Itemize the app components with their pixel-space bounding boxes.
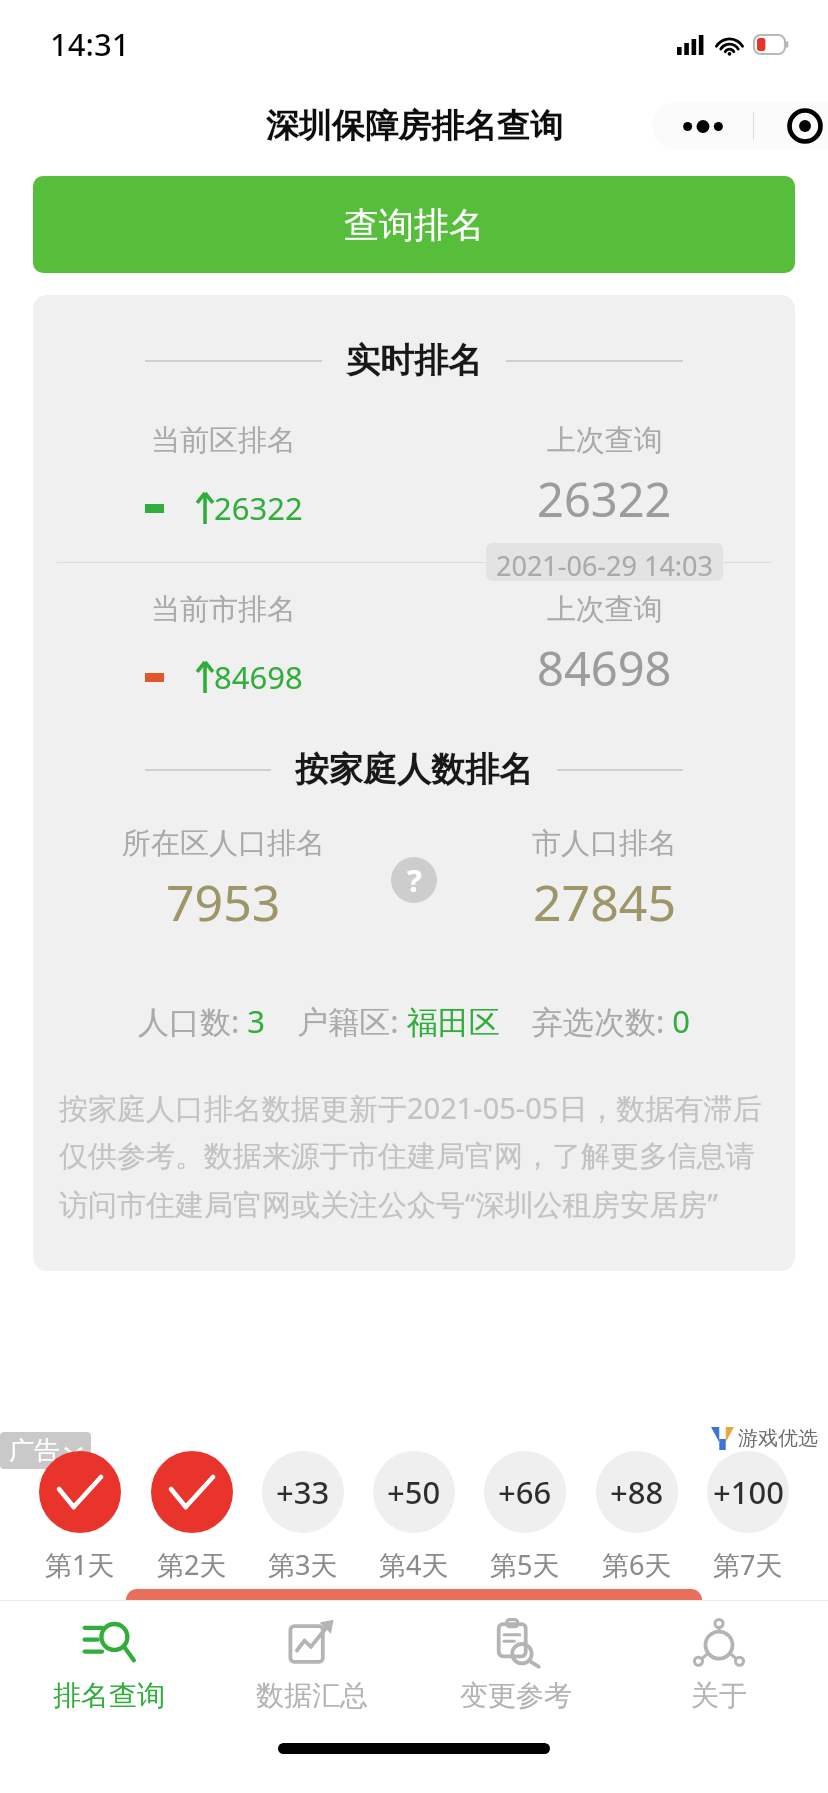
- staticText: 第4天: [379, 1546, 449, 1583]
- button[interactable]: More options: [652, 102, 828, 150]
- staticText: 7953: [166, 868, 281, 936]
- staticText: 上次查询: [547, 422, 663, 459]
- staticText: 27845: [533, 868, 676, 936]
- staticText: 14:31: [50, 23, 130, 65]
- staticText: 实时排名: [346, 339, 482, 382]
- staticText: 第1天: [45, 1546, 115, 1583]
- staticText: 游戏优选: [738, 1426, 818, 1451]
- button[interactable]: +66: [484, 1451, 566, 1583]
- button[interactable]: 第1天: [39, 1451, 121, 1583]
- button[interactable]: 排名查询: [14, 1617, 204, 1713]
- button[interactable]: 数据汇总: [217, 1617, 407, 1713]
- staticText: +100: [713, 1471, 784, 1513]
- button[interactable]: 变更参考: [421, 1617, 611, 1713]
- staticText: 当前市排名: [151, 591, 296, 628]
- staticText: 第6天: [602, 1546, 672, 1583]
- staticText: 市人口排名: [532, 825, 677, 862]
- staticText: 2021-06-29 14:03: [496, 547, 713, 577]
- staticText: 广告: [9, 1435, 59, 1466]
- staticText: +50: [387, 1471, 441, 1513]
- staticText: 84698: [214, 656, 303, 698]
- staticText: 第2天: [157, 1546, 227, 1583]
- button[interactable]: +88: [596, 1451, 678, 1583]
- button[interactable]: +33: [262, 1451, 344, 1583]
- button[interactable]: 查询排名: [33, 176, 795, 273]
- button[interactable]: 广告: [0, 1432, 91, 1469]
- staticText: 排名查询: [53, 1678, 165, 1713]
- staticText: 第5天: [490, 1546, 560, 1583]
- staticText: 84698: [537, 636, 672, 700]
- button[interactable]: 关于: [624, 1617, 814, 1713]
- staticText: +88: [610, 1471, 664, 1513]
- staticText: 上次查询: [547, 591, 663, 628]
- staticText: 按家庭人数排名: [295, 748, 533, 791]
- staticText: 关于: [691, 1678, 747, 1713]
- button[interactable]: +50: [373, 1451, 455, 1583]
- staticText: 第3天: [268, 1546, 338, 1583]
- staticText: 26322: [537, 467, 672, 531]
- staticText: 26322: [214, 487, 303, 529]
- staticText: 第7天: [713, 1546, 783, 1583]
- staticText: 所在区人口排名: [122, 825, 325, 862]
- staticText: 深圳保障房排名查询: [266, 105, 563, 147]
- staticText: 查询排名: [344, 203, 484, 247]
- button[interactable]: 第2天: [151, 1451, 233, 1583]
- staticText: 数据汇总: [256, 1678, 368, 1713]
- staticText: 当前区排名: [151, 422, 296, 459]
- staticText: +66: [498, 1471, 552, 1513]
- staticText: +33: [276, 1471, 330, 1513]
- staticText: 按家庭人口排名数据更新于2021-05-05日，数据有滞后仅供参考。数据来源于市…: [59, 1088, 769, 1223]
- staticText: ?: [407, 859, 422, 901]
- staticText: 变更参考: [460, 1678, 572, 1713]
- button[interactable]: Help: [391, 857, 437, 903]
- staticText: 人口数: 3 户籍区: 福田区 弃选次数: 0: [33, 1000, 795, 1042]
- button[interactable]: +100: [707, 1451, 789, 1583]
